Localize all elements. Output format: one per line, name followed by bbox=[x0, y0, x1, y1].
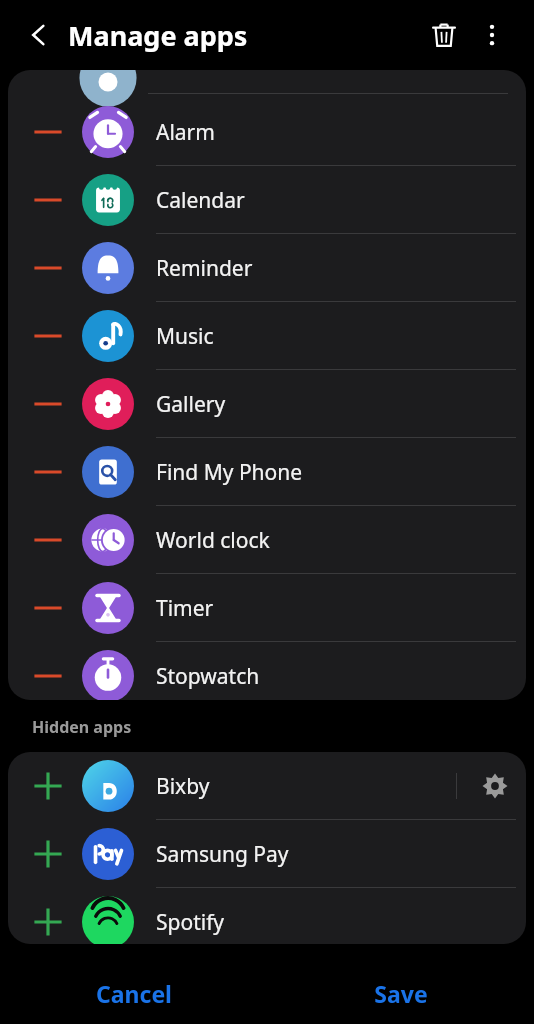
button[interactable]: Remove Timer bbox=[22, 574, 74, 642]
button[interactable]: Add Bixby bbox=[8, 752, 526, 820]
button[interactable]: Add Samsung Pay bbox=[22, 820, 74, 888]
button[interactable]: Remove Timer bbox=[8, 574, 526, 642]
button[interactable]: Remove Alarm bbox=[22, 98, 74, 166]
button[interactable]: Remove Find My Phone bbox=[8, 438, 526, 506]
button[interactable]: Save bbox=[267, 962, 534, 1024]
staticText: Calendar bbox=[156, 186, 245, 215]
button[interactable]: Add Spotify bbox=[8, 888, 526, 944]
staticText: Manage apps bbox=[68, 17, 248, 54]
staticText: Stopwatch bbox=[156, 662, 260, 691]
button[interactable]: Delete bbox=[418, 9, 470, 61]
staticText: Gallery bbox=[156, 390, 226, 419]
staticText: Timer bbox=[156, 594, 214, 623]
button[interactable]: More options bbox=[466, 9, 518, 61]
staticText: Save bbox=[374, 978, 428, 1009]
staticText: Cancel bbox=[96, 978, 172, 1009]
button[interactable]: Cancel bbox=[0, 962, 267, 1024]
staticText: Music bbox=[156, 322, 214, 351]
staticText: Spotify bbox=[156, 908, 225, 937]
staticText: Alarm bbox=[156, 118, 215, 147]
button[interactable]: Remove Calendar bbox=[22, 166, 74, 234]
button[interactable]: Bixby settings bbox=[470, 761, 520, 811]
button[interactable]: Remove Music bbox=[22, 302, 74, 370]
button[interactable]: Remove Reminder bbox=[22, 234, 74, 302]
button[interactable]: Add Bixby bbox=[22, 752, 74, 820]
button[interactable]: Remove Calendar bbox=[8, 166, 526, 234]
button[interactable]: Remove Find My Phone bbox=[22, 438, 74, 506]
button[interactable]: Back bbox=[12, 8, 66, 62]
staticText: Find My Phone bbox=[156, 458, 303, 487]
staticText: Bixby bbox=[156, 772, 210, 801]
staticText: Hidden apps bbox=[32, 716, 132, 738]
button[interactable]: Add Samsung Pay bbox=[8, 820, 526, 888]
button[interactable]: Remove Stopwatch bbox=[8, 642, 526, 700]
button[interactable]: Remove Gallery bbox=[8, 370, 526, 438]
staticText: World clock bbox=[156, 526, 270, 555]
button[interactable]: Remove World clock bbox=[22, 506, 74, 574]
button[interactable]: Remove World clock bbox=[8, 506, 526, 574]
button[interactable]: Remove Gallery bbox=[22, 370, 74, 438]
button[interactable]: Remove Stopwatch bbox=[22, 642, 74, 700]
staticText: Samsung Pay bbox=[156, 840, 289, 869]
button[interactable]: Remove Music bbox=[8, 302, 526, 370]
staticText: Reminder bbox=[156, 254, 253, 283]
button[interactable]: Add Spotify bbox=[22, 888, 74, 944]
button[interactable]: Remove Reminder bbox=[8, 234, 526, 302]
button[interactable]: Remove Alarm bbox=[8, 98, 526, 166]
